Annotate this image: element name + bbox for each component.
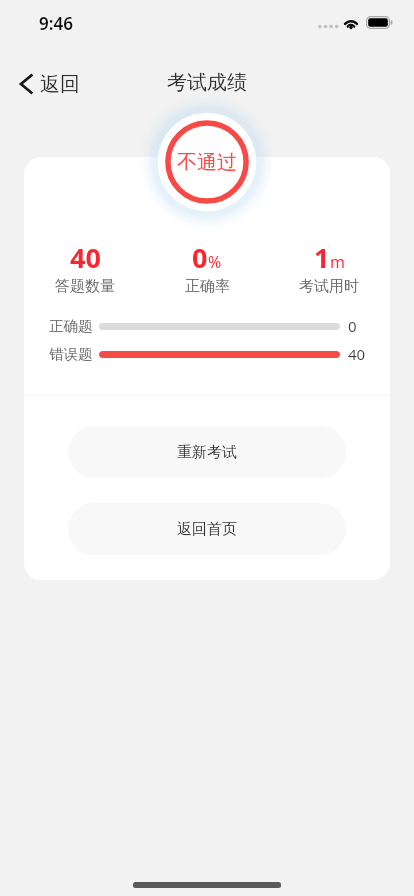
- staticText: 40: [70, 239, 101, 276]
- staticText: 不通过: [177, 150, 237, 175]
- staticText: 重新考试: [177, 443, 237, 462]
- staticText: 答题数量: [55, 277, 115, 296]
- staticText: 40: [348, 344, 366, 364]
- staticText: 0: [192, 239, 208, 276]
- staticText: m: [330, 251, 345, 273]
- staticText: 1: [314, 239, 330, 276]
- staticText: 错误题: [49, 345, 93, 363]
- staticText: 返回首页: [177, 520, 237, 539]
- staticText: 考试用时: [299, 277, 359, 296]
- staticText: 9:46: [39, 12, 73, 35]
- button[interactable]: 重新考试: [68, 426, 346, 478]
- staticText: 正确题: [49, 317, 93, 335]
- button[interactable]: 返回: [11, 66, 88, 101]
- staticText: 返回: [40, 72, 80, 97]
- staticText: %: [208, 251, 222, 273]
- staticText: 考试成绩: [167, 70, 247, 95]
- button[interactable]: 返回首页: [68, 503, 346, 555]
- staticText: 0: [348, 316, 357, 336]
- staticText: 正确率: [185, 277, 230, 296]
